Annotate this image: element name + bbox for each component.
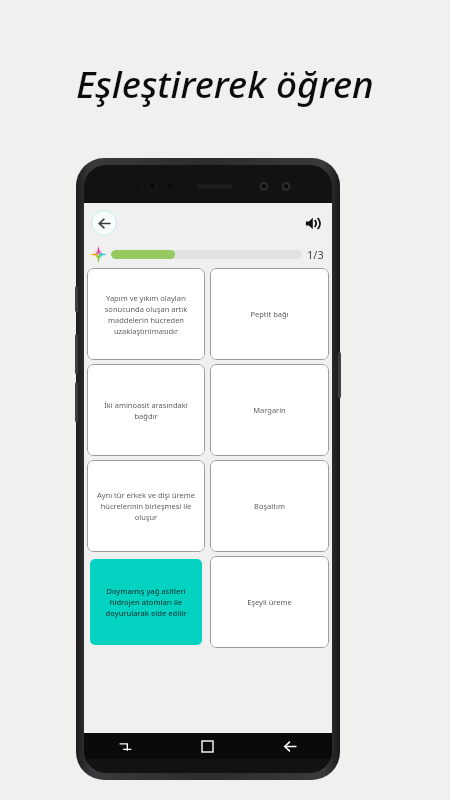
staticText: 1/3: [307, 247, 324, 262]
staticText: Peptit bağı: [250, 309, 289, 319]
staticText: Margarin: [253, 405, 286, 415]
staticText: Doymamış yağ asitleri hidrojen atomları …: [95, 586, 197, 618]
button[interactable]: Boşaltım: [210, 460, 329, 552]
button[interactable]: Eşeyli üreme: [210, 556, 329, 648]
button[interactable]: Aynı tür erkek ve dişi üreme hücrelerini…: [87, 460, 205, 552]
staticText: Eşeyli üreme: [247, 597, 292, 607]
button[interactable]: Recent apps: [84, 733, 166, 759]
button[interactable]: İki aminoasit arasındaki bağdır: [87, 364, 205, 456]
button[interactable]: Home: [166, 733, 249, 759]
staticText: Yapım ve yıkım olayları sonucunda oluşan…: [93, 293, 199, 336]
staticText: Boşaltım: [254, 501, 285, 511]
staticText: Eşleştirerek öğren: [76, 58, 374, 108]
staticText: İki aminoasit arasındaki bağdır: [93, 400, 199, 421]
button[interactable]: Yapım ve yıkım olayları sonucunda oluşan…: [87, 268, 205, 360]
button[interactable]: Doymamış yağ asitleri hidrojen atomları …: [90, 559, 202, 645]
button[interactable]: Margarin: [210, 364, 329, 456]
staticText: Aynı tür erkek ve dişi üreme hücrelerini…: [93, 490, 199, 522]
button[interactable]: Back: [249, 733, 332, 759]
button[interactable]: Sound: [300, 211, 324, 235]
button[interactable]: Back: [91, 210, 117, 236]
button[interactable]: Peptit bağı: [210, 268, 329, 360]
